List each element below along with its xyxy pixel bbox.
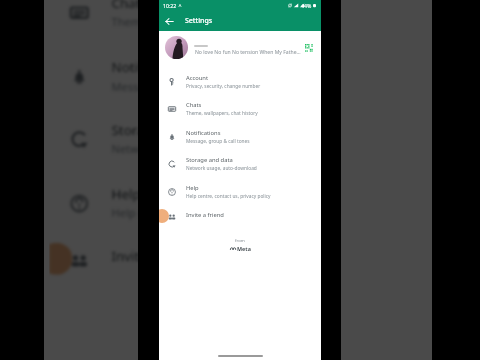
button[interactable]: Notifications xyxy=(159,124,321,152)
button[interactable]: Notifications xyxy=(49,47,422,111)
button[interactable]: Account xyxy=(159,69,321,97)
staticText: Theme, wallpapers, chat history xyxy=(111,15,277,31)
button[interactable]: Back xyxy=(159,11,179,31)
staticText: Storage and data xyxy=(186,156,233,164)
staticText: 10:22 xyxy=(163,2,177,9)
staticText: Chats xyxy=(111,0,148,13)
staticText: Help xyxy=(186,184,199,192)
button[interactable]: Chats xyxy=(159,96,321,124)
staticText: Theme, wallpapers, chat history xyxy=(186,110,258,117)
staticText: No love No fun No tension When My Fathe.… xyxy=(195,49,301,56)
staticText: Network usage, auto-download xyxy=(111,141,275,158)
staticText: Privacy, security, change number xyxy=(186,83,261,90)
staticText: Invite a friend xyxy=(186,211,224,219)
button[interactable]: No love No fun No tension When My Fathe.… xyxy=(159,33,321,63)
staticText: Meta xyxy=(237,245,251,252)
staticText: Help centre, contact us, privacy policy xyxy=(111,206,307,222)
button[interactable]: Help xyxy=(159,179,321,207)
button[interactable]: Storage and data xyxy=(49,109,422,174)
button[interactable]: Invite a friend xyxy=(159,206,321,234)
staticText: Account xyxy=(186,74,209,82)
button[interactable]: Help xyxy=(49,174,422,238)
button[interactable]: QR code xyxy=(303,42,315,54)
button[interactable]: Invite a friend xyxy=(49,236,422,300)
button[interactable]: Storage and data xyxy=(159,151,321,179)
staticText: Network usage, auto-download xyxy=(186,165,257,172)
staticText: Notifications xyxy=(111,59,192,77)
staticText: Storage and data xyxy=(111,121,220,139)
staticText: Message, group & call tones xyxy=(111,79,259,95)
staticText: Chats xyxy=(186,101,202,109)
staticText: 44% xyxy=(301,2,312,9)
staticText: Settings xyxy=(185,16,213,26)
staticText: Help xyxy=(111,185,141,203)
button[interactable]: Chats xyxy=(49,0,422,47)
staticText: Message, group & call tones xyxy=(186,138,250,145)
staticText: Notifications xyxy=(186,129,221,137)
staticText: from xyxy=(235,237,245,243)
staticText: Invite a friend xyxy=(111,247,199,266)
staticText: Help centre, contact us, privacy policy xyxy=(186,193,271,200)
